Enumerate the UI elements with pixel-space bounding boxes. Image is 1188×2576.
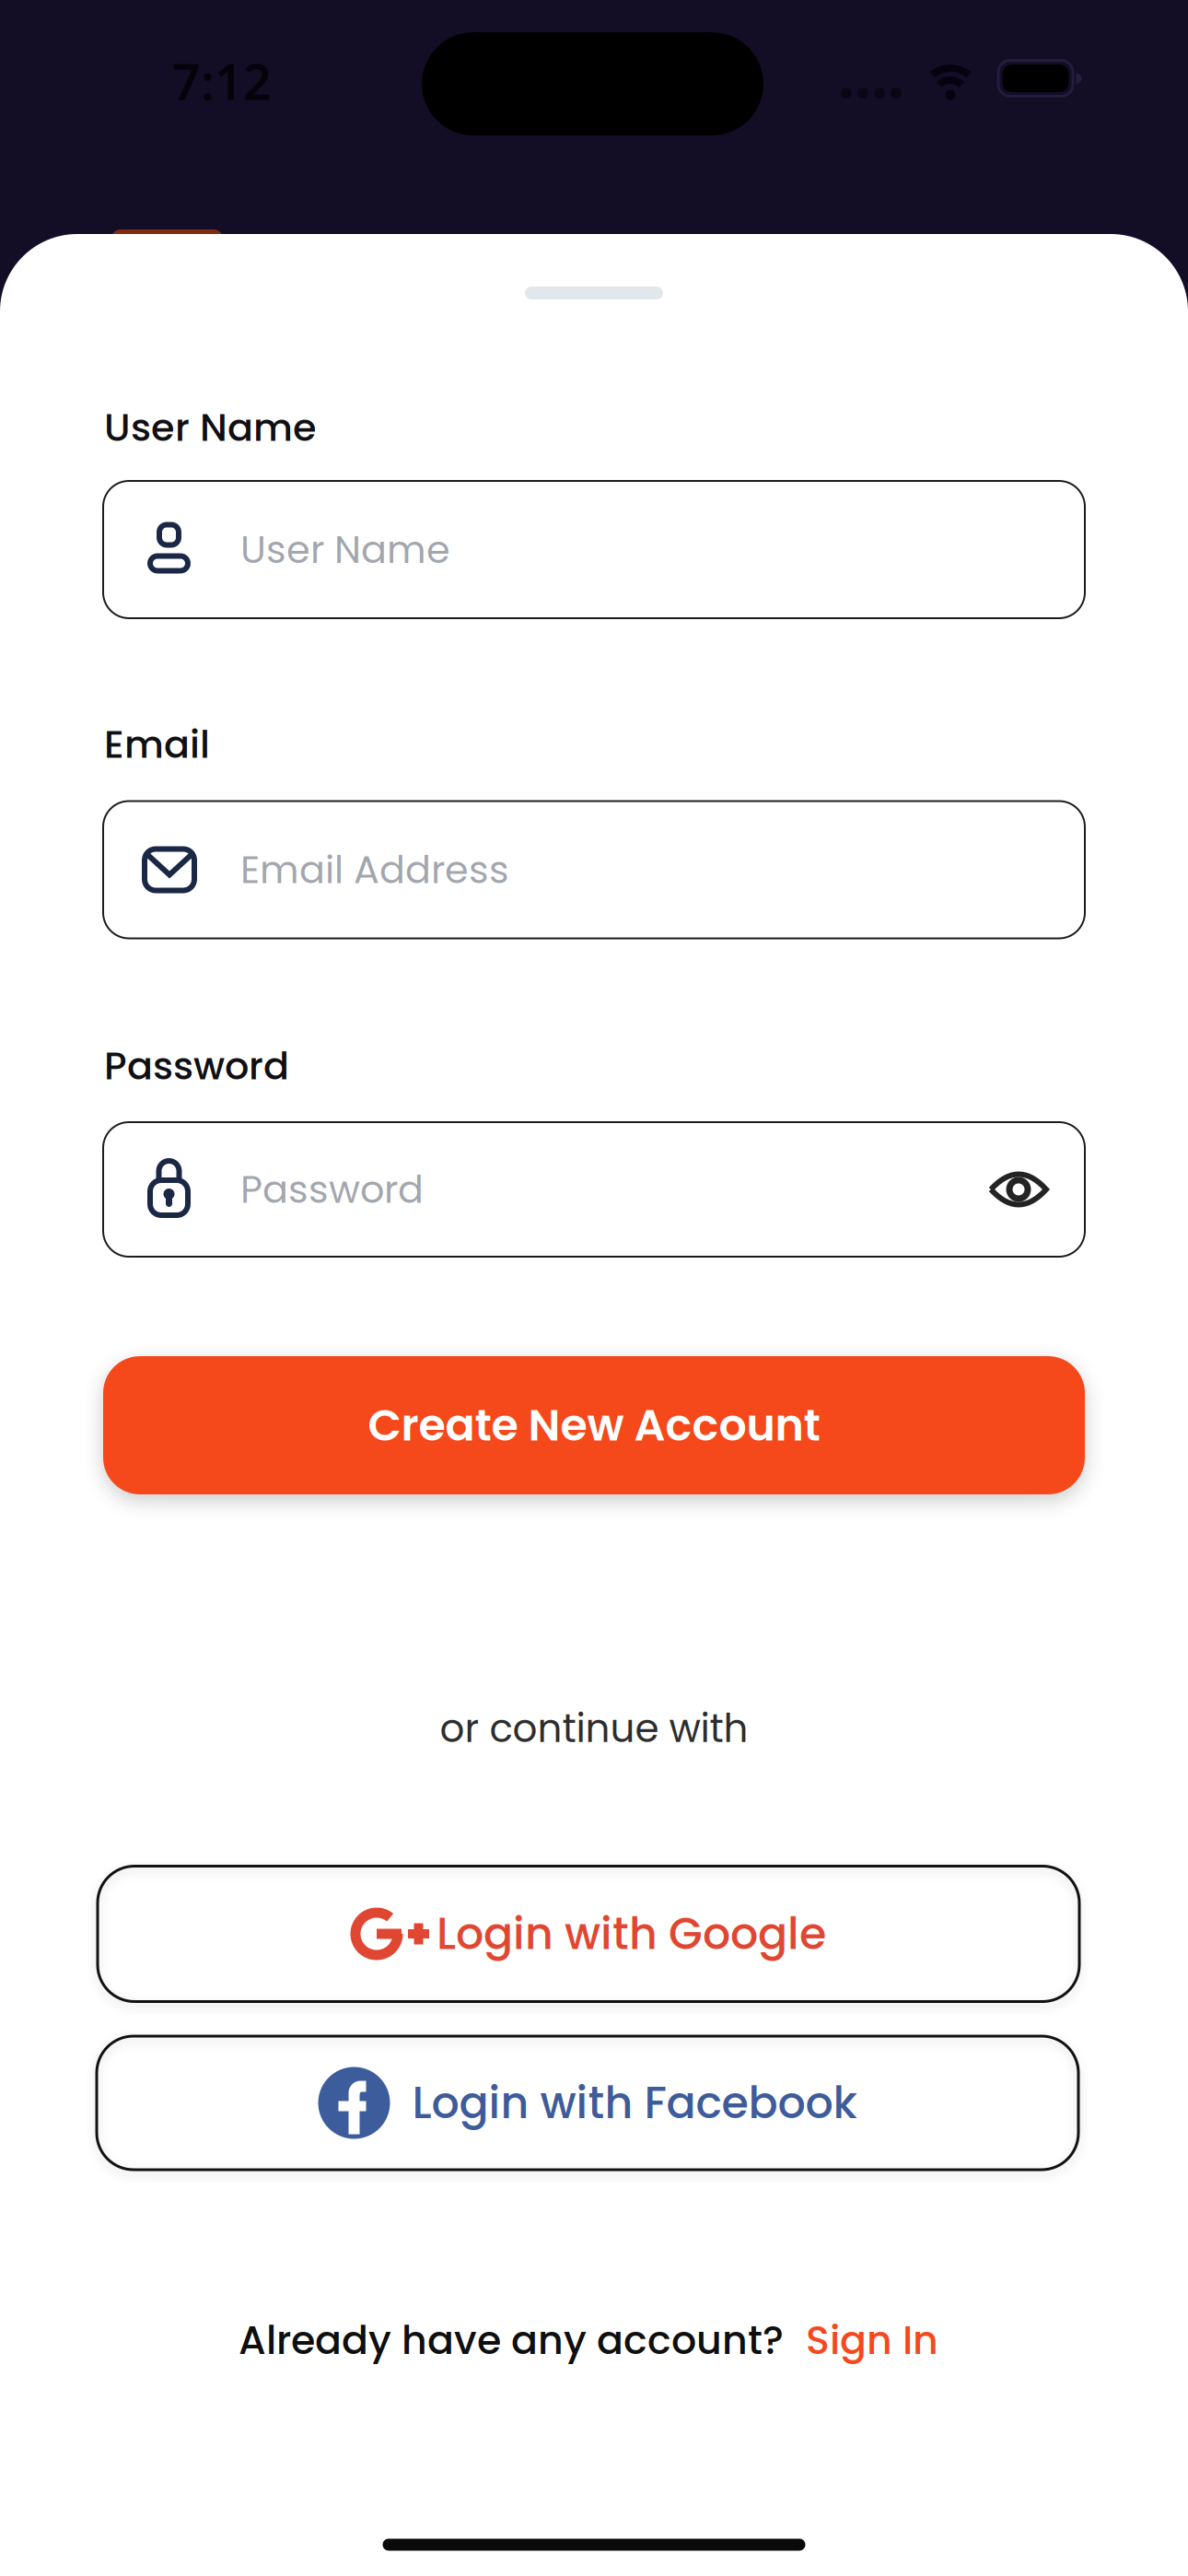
staticText: or continue with (440, 1701, 748, 1755)
staticText: Password (104, 1039, 289, 1093)
staticText: Login with Facebook (412, 2072, 857, 2134)
button[interactable]: Login with Google (98, 1866, 1079, 2002)
staticText: Create New Account (368, 1395, 820, 1456)
button[interactable]: Login with Facebook (97, 2036, 1078, 2170)
staticText: Password (240, 1163, 424, 1216)
staticText: Sign In (806, 2313, 938, 2368)
staticText: Login with Google (437, 1903, 826, 1965)
staticText: User Name (104, 401, 317, 454)
staticText: Email Address (240, 843, 509, 896)
staticText: User Name (240, 523, 450, 576)
button[interactable]: Sign In (806, 2313, 938, 2368)
staticText: Email (104, 718, 210, 771)
button[interactable]: Create New Account (103, 1356, 1085, 1494)
staticText: Already have any account? (239, 2313, 784, 2368)
button[interactable]: Show password (988, 1168, 1049, 1211)
staticText: 7:12 (172, 48, 272, 114)
